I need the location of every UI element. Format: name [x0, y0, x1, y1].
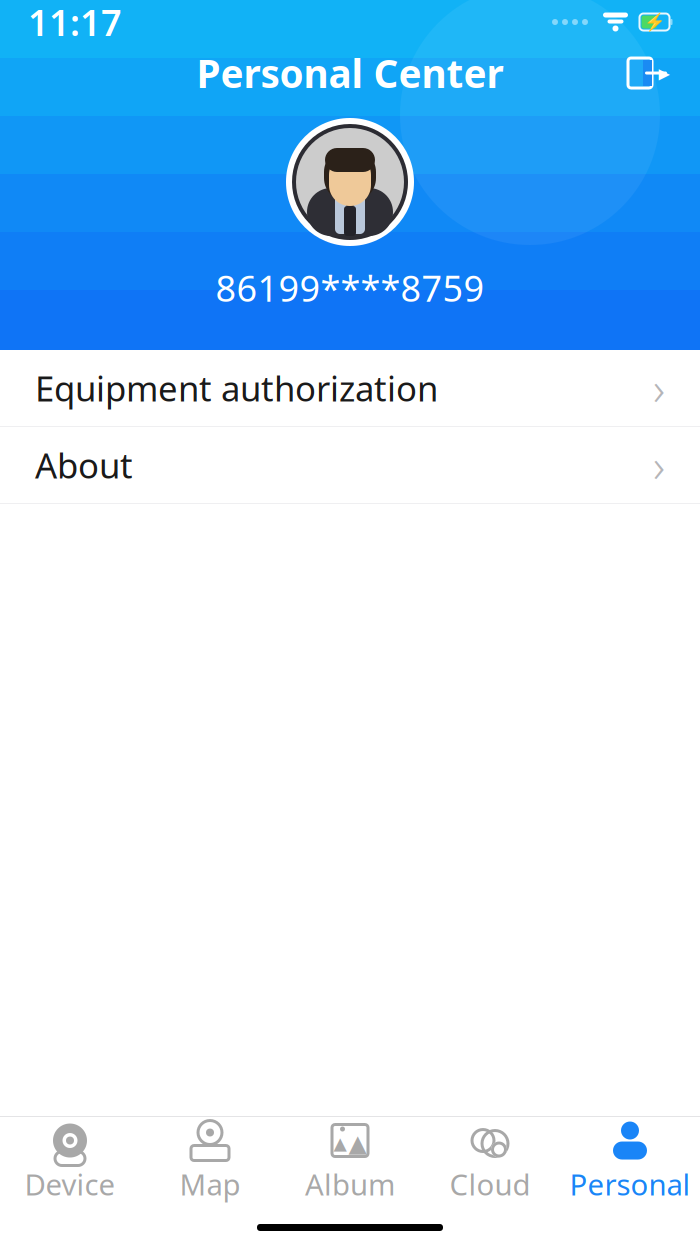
staticText: 11:17 — [28, 0, 122, 46]
button[interactable]: Equipment authorization — [0, 350, 700, 427]
button[interactable]: Log out — [614, 47, 682, 99]
button[interactable]: Personal — [560, 1112, 700, 1209]
button[interactable]: About — [0, 427, 700, 504]
staticText: 86199****8759 — [215, 264, 484, 312]
button[interactable]: Device — [0, 1112, 140, 1209]
staticText: About — [35, 442, 133, 488]
staticText: ⚡ — [643, 12, 665, 32]
button[interactable]: ▲ — [280, 1112, 420, 1209]
staticText: Album — [305, 1164, 395, 1203]
staticText: ▸ — [658, 60, 669, 86]
staticText: Personal Center — [196, 47, 503, 99]
staticText: Personal — [569, 1164, 690, 1203]
staticText: Cloud — [449, 1164, 530, 1203]
staticText: ▲ — [348, 1130, 366, 1157]
staticText: Device — [24, 1164, 115, 1203]
staticText: ▲ — [333, 1134, 346, 1153]
button[interactable]: Map — [140, 1112, 280, 1209]
staticText: Map — [179, 1164, 240, 1203]
staticText: › — [653, 435, 665, 495]
staticText: Equipment authorization — [35, 365, 438, 411]
button[interactable]: Cloud — [420, 1112, 560, 1209]
staticText: › — [653, 358, 665, 418]
